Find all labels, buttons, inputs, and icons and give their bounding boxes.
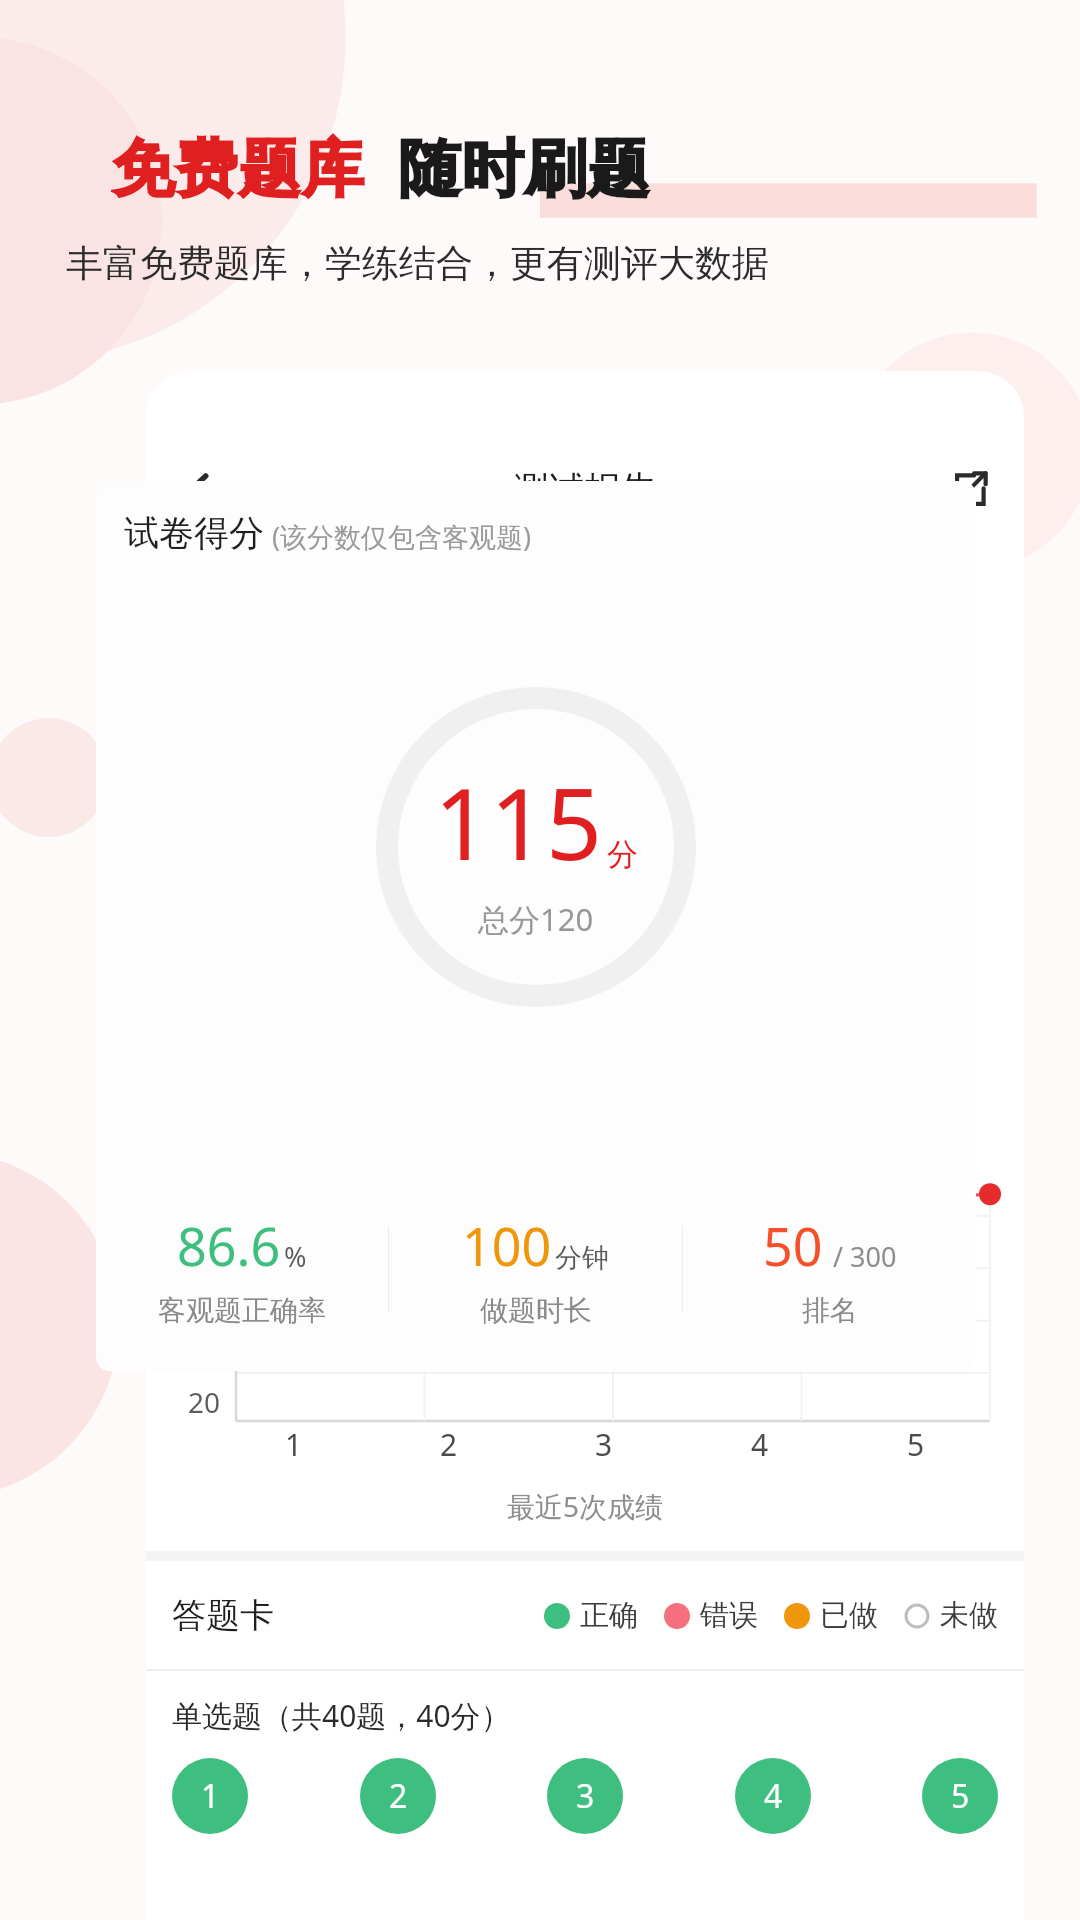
staticText: 86.6 <box>177 1210 281 1281</box>
staticText: 最近5次成绩 <box>146 1487 1024 1525</box>
staticText: 未做 <box>940 1597 998 1634</box>
staticText: 2 <box>440 1424 458 1465</box>
staticText: 随时刷题 <box>398 130 650 208</box>
staticText: 丰富免费题库，学练结合，更有测评大数据 <box>66 240 1080 287</box>
staticText: 做题时长 <box>480 1293 592 1328</box>
staticText: 免费题库 <box>112 130 364 208</box>
staticText: 错误 <box>700 1597 758 1634</box>
staticText: 试卷得分 <box>124 511 264 555</box>
staticText: 60 <box>188 1255 221 1293</box>
staticText: 20 <box>188 1383 221 1421</box>
staticText: (该分数仅包含客观题) <box>272 518 532 555</box>
staticText: 正确 <box>580 1597 638 1634</box>
staticText: 115 <box>434 755 603 888</box>
staticText: 50 <box>763 1210 823 1281</box>
staticText: 客观题正确率 <box>158 1293 326 1328</box>
button[interactable]: 未做 <box>904 1597 998 1634</box>
staticText: 排名 <box>802 1293 858 1328</box>
button[interactable]: 100 <box>389 1210 682 1328</box>
staticText: 80 <box>188 1191 221 1229</box>
staticText: 测试报告 <box>513 467 657 512</box>
button[interactable]: 已做 <box>784 1597 878 1634</box>
button[interactable]: 86.6 <box>96 1210 388 1328</box>
staticText: % <box>284 1238 307 1275</box>
staticText: 100 <box>462 1210 552 1281</box>
staticText: / 300 <box>826 1238 897 1275</box>
staticText: 40 <box>188 1319 221 1357</box>
button[interactable]: Share <box>942 461 998 517</box>
staticText: 总分120 <box>478 898 594 940</box>
button[interactable]: 3 <box>547 1758 623 1834</box>
staticText: 1 <box>201 1774 220 1818</box>
button[interactable]: 50 <box>683 1210 976 1328</box>
button[interactable]: 错误 <box>664 1597 758 1634</box>
staticText: 单选题（共40题，40分） <box>172 1695 511 1736</box>
button[interactable]: Back <box>172 461 228 517</box>
staticText: 3 <box>576 1774 595 1818</box>
staticText: 2 <box>389 1774 408 1818</box>
staticText: 5 <box>907 1424 925 1465</box>
button[interactable]: 1 <box>172 1758 248 1834</box>
button[interactable]: 4 <box>735 1758 811 1834</box>
staticText: 5 <box>951 1774 970 1818</box>
staticText: 已做 <box>820 1597 878 1634</box>
staticText: 答题卡 <box>172 1594 274 1637</box>
staticText: 分钟 <box>555 1241 609 1275</box>
staticText: 分 <box>607 835 638 874</box>
button[interactable]: 正确 <box>544 1597 638 1634</box>
staticText: 3 <box>595 1424 613 1465</box>
staticText: 4 <box>751 1424 769 1465</box>
button[interactable]: 2 <box>360 1758 436 1834</box>
staticText: 1 <box>285 1424 303 1465</box>
button[interactable]: 5 <box>922 1758 998 1834</box>
staticText: 4 <box>764 1774 783 1818</box>
